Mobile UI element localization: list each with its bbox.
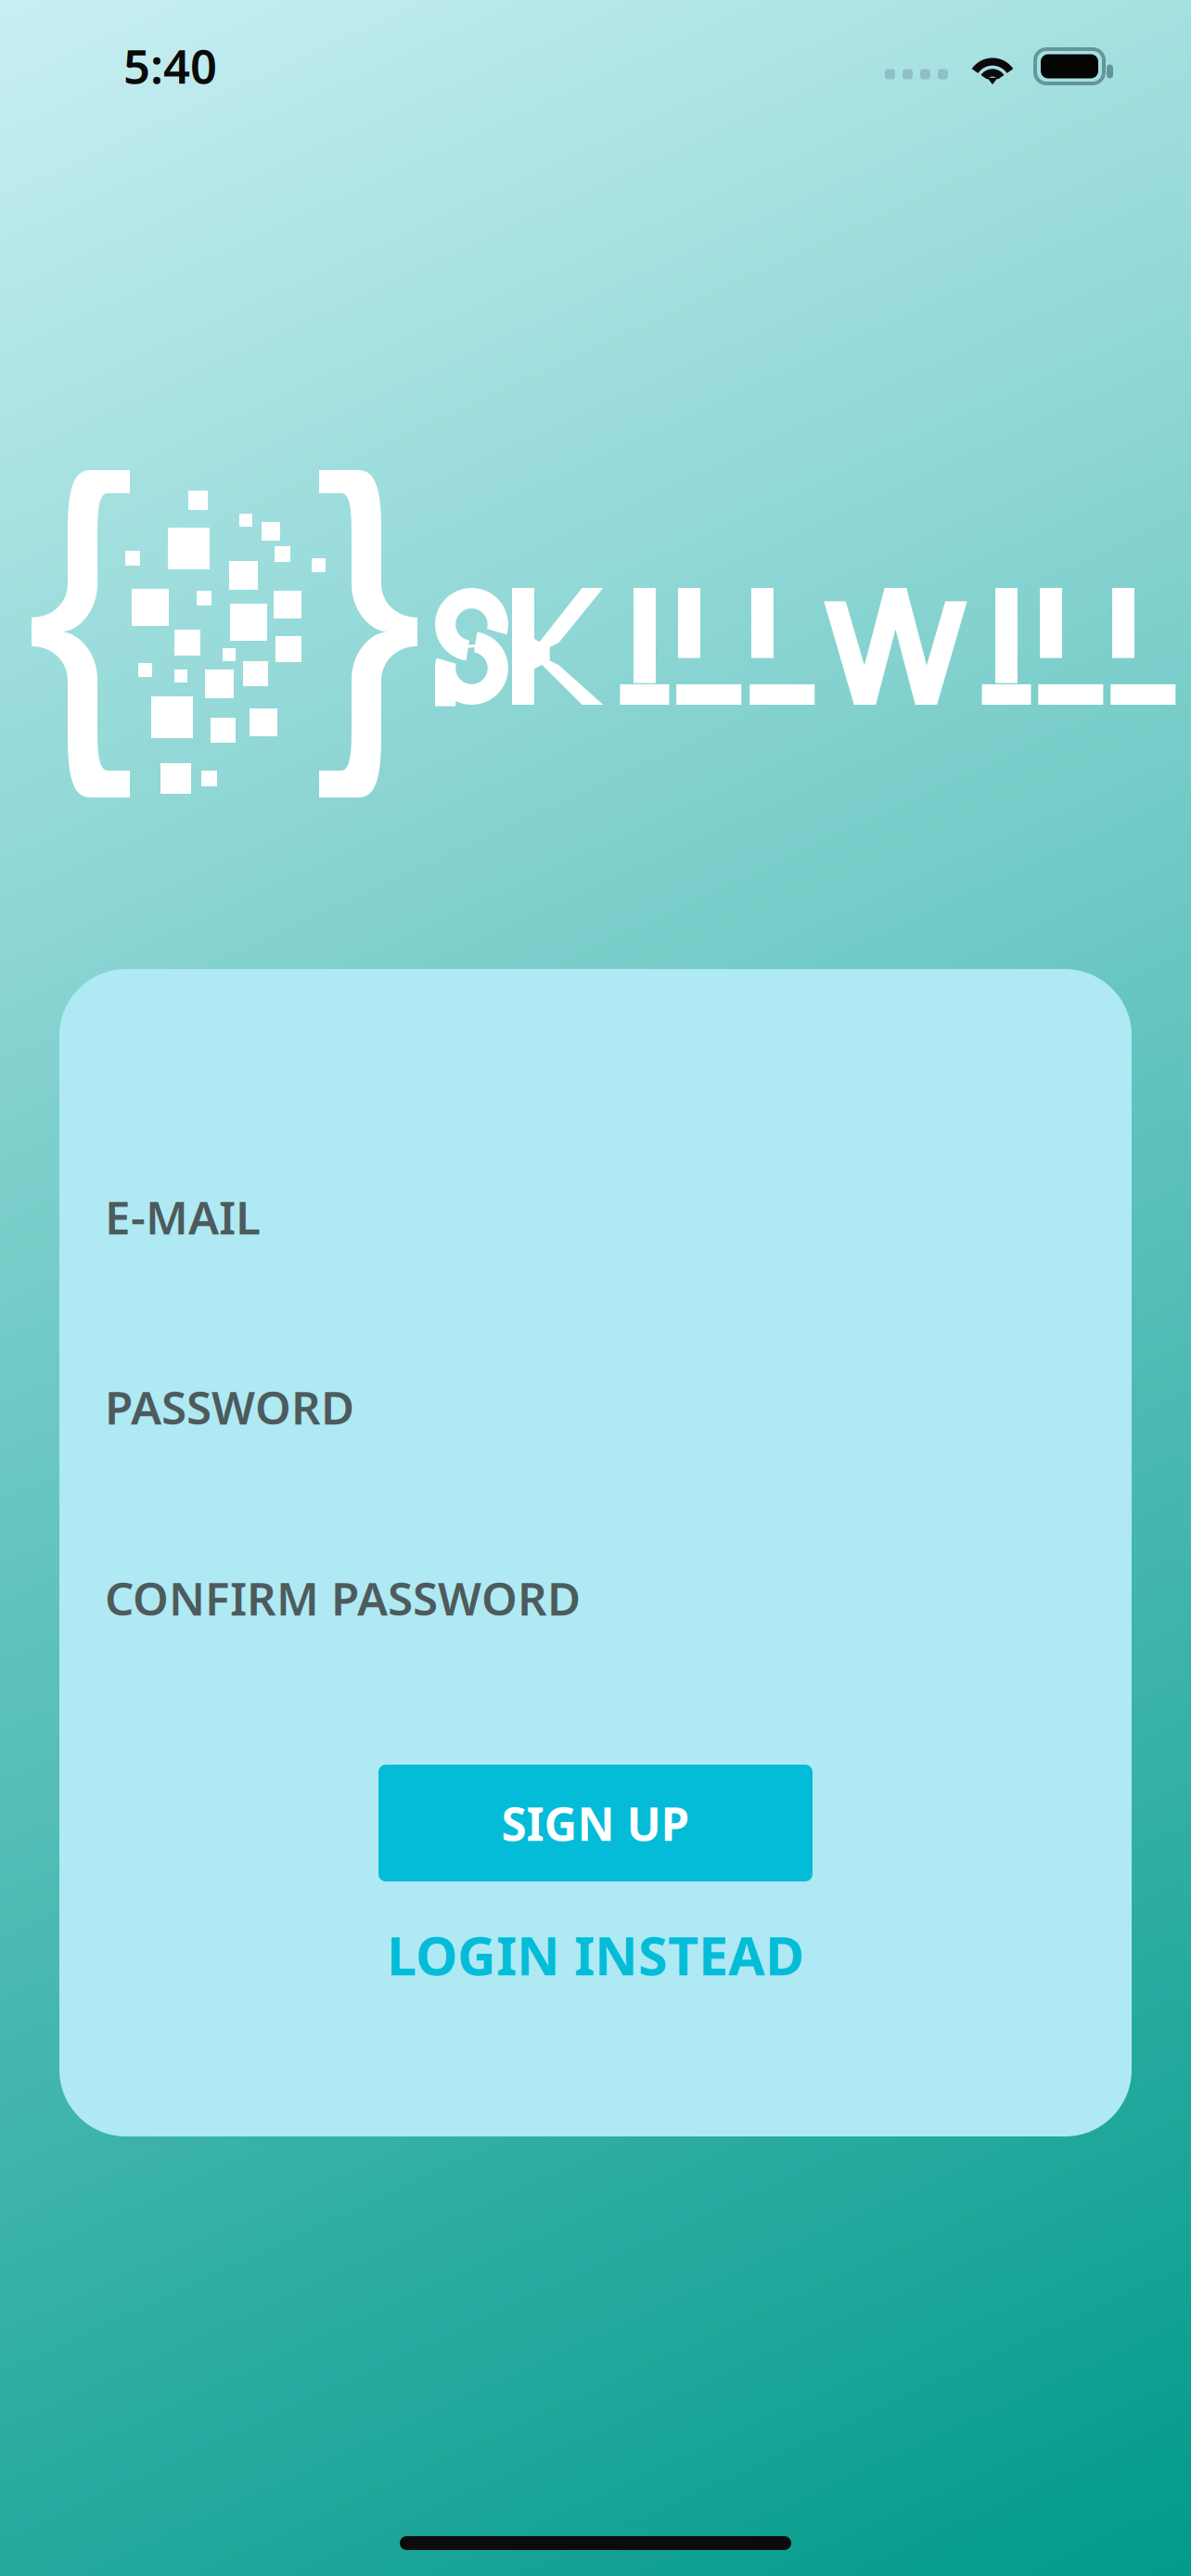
button[interactable]: SIGN UP (378, 1765, 813, 1881)
staticText: E-MAIL (105, 1186, 261, 1247)
button[interactable]: LOGIN INSTEAD (364, 1918, 827, 1992)
staticText: PASSWORD (105, 1376, 354, 1437)
button[interactable]: PASSWORD (105, 1377, 940, 1436)
button[interactable]: CONFIRM PASSWORD (105, 1568, 940, 1627)
button[interactable]: E-MAIL (105, 1187, 940, 1246)
staticText: 5:40 (123, 34, 217, 97)
staticText: SIGN UP (501, 1793, 690, 1853)
staticText: CONFIRM PASSWORD (105, 1567, 581, 1628)
staticText: LOGIN INSTEAD (387, 1919, 804, 1990)
